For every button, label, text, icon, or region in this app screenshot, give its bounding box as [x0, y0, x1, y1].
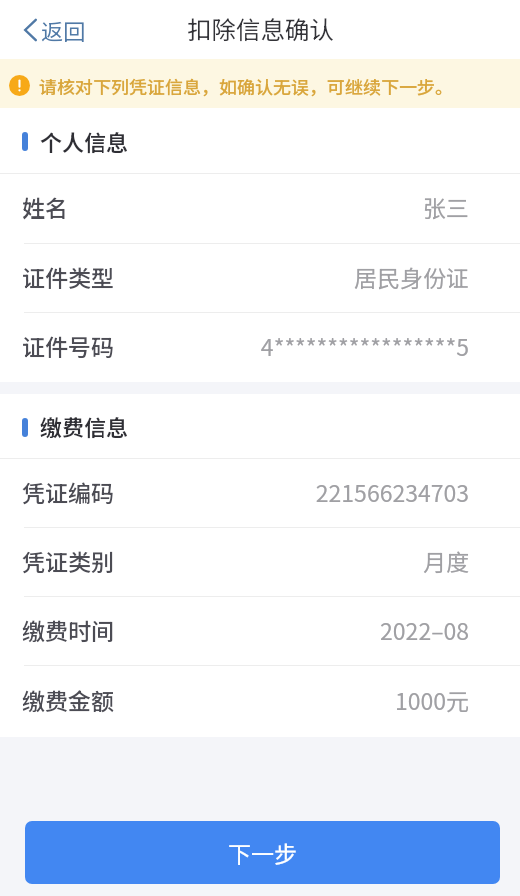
staticText: 张三: [423, 190, 469, 223]
staticText: 缴费时间: [22, 613, 114, 646]
button[interactable]: 证件类型: [0, 244, 520, 313]
button[interactable]: 凭证编码: [0, 459, 520, 528]
button[interactable]: 姓名: [0, 174, 520, 244]
staticText: 2022–08: [380, 613, 469, 646]
staticText: 个人信息: [40, 125, 129, 157]
staticText: 凭证编码: [22, 475, 114, 508]
staticText: 4*****************5: [260, 329, 469, 362]
staticText: 月度: [423, 544, 469, 577]
staticText: 1000元: [394, 683, 469, 716]
button[interactable]: 返回: [0, 6, 98, 54]
staticText: 凭证类别: [22, 544, 114, 577]
staticText: 证件号码: [22, 329, 114, 362]
button[interactable]: 下一步: [25, 821, 500, 884]
staticText: 下一步: [228, 836, 297, 869]
staticText: 返回: [41, 14, 86, 46]
staticText: 姓名: [22, 190, 68, 223]
staticText: 居民身份证: [354, 260, 469, 293]
staticText: 扣除信息确认: [187, 11, 334, 46]
button[interactable]: 缴费金额: [0, 666, 520, 737]
button[interactable]: 证件号码: [0, 313, 520, 382]
button[interactable]: 缴费时间: [0, 597, 520, 666]
staticText: 证件类型: [22, 260, 114, 293]
button[interactable]: 凭证类别: [0, 528, 520, 597]
staticText: 缴费金额: [22, 683, 114, 716]
staticText: 请核对下列凭证信息，如确认无误，可继续下一步。: [39, 73, 453, 99]
staticText: 缴费信息: [40, 410, 129, 442]
staticText: 221566234703: [315, 475, 469, 508]
